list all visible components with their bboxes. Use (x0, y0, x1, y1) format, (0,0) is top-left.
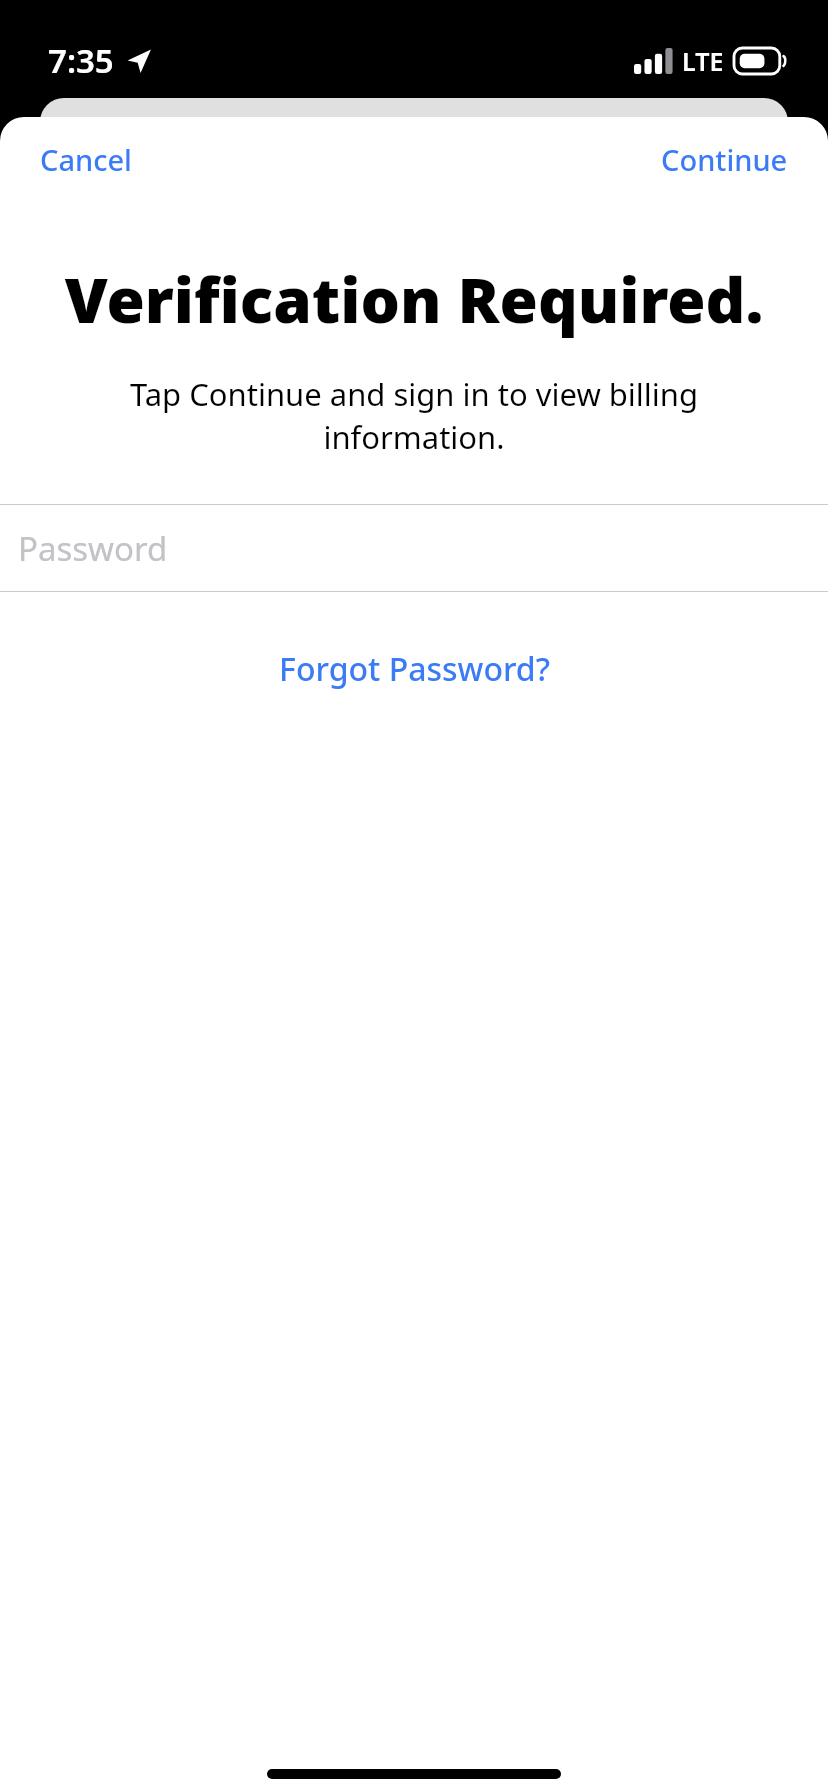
other: Battery (734, 48, 786, 74)
button[interactable]: Password (0, 505, 828, 591)
staticText: Tap Continue and sign in to view billing… (95, 373, 733, 458)
staticText: LTE (682, 44, 724, 78)
staticText: Cancel (40, 140, 132, 179)
staticText: Verification Required. (20, 257, 808, 341)
staticText: Password (18, 526, 168, 571)
staticText: 7:35 (48, 38, 114, 83)
other: Location active (126, 48, 152, 74)
staticText: Forgot Password? (279, 647, 550, 691)
staticText: Continue (661, 140, 788, 179)
button[interactable]: Cancel (24, 130, 148, 189)
other: Cellular signal (634, 48, 672, 74)
button[interactable]: Continue (645, 130, 804, 189)
button[interactable]: Forgot Password? (259, 637, 570, 701)
